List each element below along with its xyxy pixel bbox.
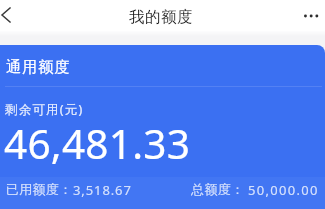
staticText: 通用额度 [6, 57, 71, 76]
staticText: 总额度： [191, 181, 244, 197]
staticText: 我的额度 [129, 7, 194, 27]
button[interactable]: Back [0, 0, 26, 31]
staticText: 已用额度： [6, 181, 73, 197]
staticText: 46,481.33 [4, 116, 191, 171]
staticText: 3,518.67 [73, 181, 132, 199]
staticText: 剩余可用(元) [5, 101, 84, 118]
button[interactable]: More options [297, 0, 325, 31]
button[interactable]: 通用额度 [0, 45, 325, 209]
staticText: 50,000.00 [248, 181, 319, 199]
